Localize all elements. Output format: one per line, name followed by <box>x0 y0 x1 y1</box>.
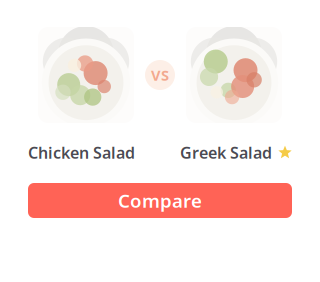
button[interactable]: Compare <box>28 183 292 218</box>
staticText: Compare <box>118 188 202 213</box>
staticText: Chicken Salad <box>28 142 135 163</box>
staticText: VS <box>151 65 169 85</box>
staticText: Greek Salad <box>180 142 272 163</box>
